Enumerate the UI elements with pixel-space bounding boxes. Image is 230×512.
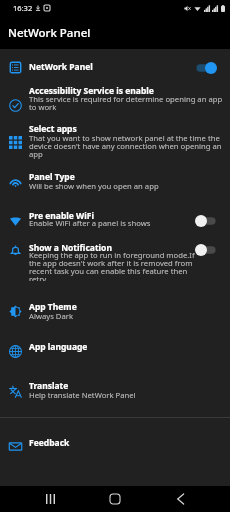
button[interactable]: Feedback [0,432,230,452]
button[interactable]: Recents [30,486,70,512]
staticText: Panel Type [29,171,225,183]
staticText: App language [29,341,225,353]
button[interactable]: Translate [0,375,230,407]
button[interactable]: Accessibility Service is enable [0,80,230,112]
staticText: NetWork Panel [8,25,91,41]
staticText: Keeping the app to run in foreground mod… [29,250,197,281]
button[interactable]: Show a Notification [0,237,230,268]
button[interactable]: Panel Type [0,166,230,199]
button[interactable]: Select apps [0,118,230,151]
staticText: Pre enable WiFi [29,210,197,222]
button[interactable]: NetWork Panel [0,56,230,76]
button[interactable]: Back [160,486,200,512]
staticText: Enable WiFi after a panel is shows [29,218,197,228]
staticText: Help translate NetWork Panel [29,390,225,400]
button[interactable]: Home [95,486,135,512]
staticText: This service is required for determine o… [29,94,225,113]
staticText: Will be show when you open an app [29,181,225,191]
staticText: Translate [29,380,225,392]
staticText: Always Dark [29,311,225,321]
staticText: NetWork Panel [29,61,197,73]
staticText: Feedback [29,437,225,449]
staticText: Show a Notification [29,242,197,254]
staticText: Accessibility Service is enable [29,85,225,97]
staticText: That you want to show network panel at t… [29,133,225,160]
button[interactable]: App Theme [0,296,230,328]
staticText: Select apps [29,123,225,135]
staticText: App Theme [29,301,225,313]
button[interactable]: App language [0,336,230,356]
button[interactable]: Pre enable WiFi [0,205,230,236]
staticText: 16:32 [13,3,33,13]
